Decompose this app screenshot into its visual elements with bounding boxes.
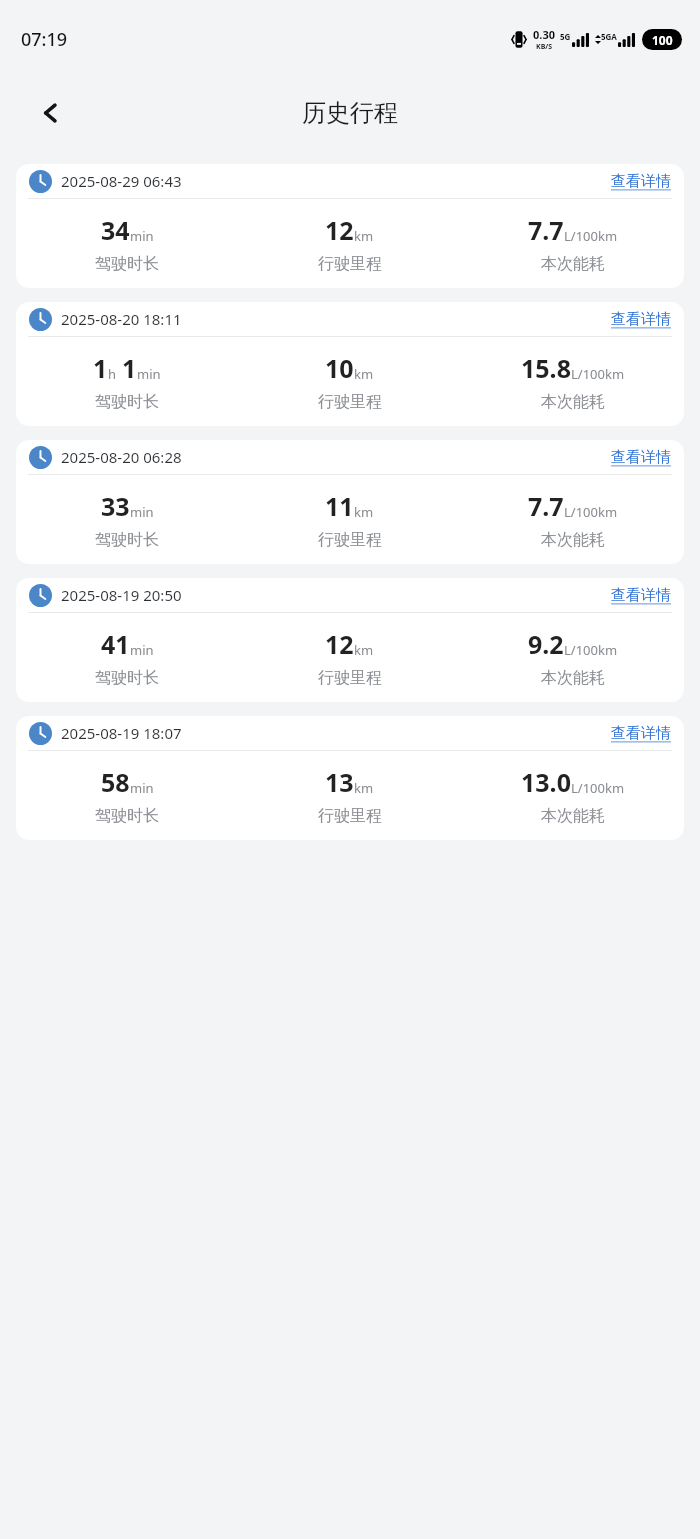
staticText: min: [130, 503, 154, 521]
staticText: 驾驶时长: [95, 668, 159, 688]
staticText: 13.0: [521, 765, 571, 799]
staticText: 本次能耗: [541, 668, 605, 688]
staticText: 1: [122, 351, 137, 385]
staticText: 100: [652, 32, 673, 48]
staticText: min: [130, 779, 154, 797]
button[interactable]: Back: [28, 90, 74, 136]
staticText: 7.7: [528, 213, 564, 247]
button[interactable]: 2025-08-20 18:11: [16, 302, 684, 426]
staticText: 34: [101, 213, 130, 247]
staticText: 07:19: [21, 27, 68, 52]
staticText: L/100km: [564, 227, 618, 245]
staticText: 2025-08-20 18:11: [61, 309, 182, 329]
staticText: 41: [101, 627, 130, 661]
staticText: 查看详情: [611, 172, 671, 191]
staticText: 2025-08-29 06:43: [61, 171, 182, 191]
button[interactable]: 2025-08-29 06:43: [16, 164, 684, 288]
staticText: min: [130, 227, 154, 245]
staticText: KB/S: [536, 42, 553, 52]
staticText: km: [354, 641, 374, 659]
staticText: 行驶里程: [318, 254, 382, 274]
staticText: 本次能耗: [541, 254, 605, 274]
staticText: h: [108, 365, 117, 383]
staticText: 驾驶时长: [95, 392, 159, 412]
staticText: 历史行程: [302, 98, 398, 128]
staticText: 本次能耗: [541, 392, 605, 412]
staticText: 驾驶时长: [95, 530, 159, 550]
staticText: 11: [325, 489, 354, 523]
staticText: 2025-08-20 06:28: [61, 447, 182, 467]
button[interactable]: 2025-08-19 18:07: [16, 716, 684, 840]
staticText: km: [354, 779, 374, 797]
staticText: 本次能耗: [541, 530, 605, 550]
staticText: km: [354, 227, 374, 245]
staticText: min: [137, 365, 161, 383]
button[interactable]: 查看详情: [609, 446, 673, 469]
staticText: 行驶里程: [318, 668, 382, 688]
staticText: 7.7: [528, 489, 564, 523]
staticText: 查看详情: [611, 586, 671, 605]
staticText: 本次能耗: [541, 806, 605, 826]
staticText: km: [354, 365, 374, 383]
staticText: 1: [93, 351, 108, 385]
staticText: 5G: [560, 31, 571, 42]
button[interactable]: 查看详情: [609, 584, 673, 607]
staticText: 12: [325, 627, 354, 661]
staticText: L/100km: [571, 365, 625, 383]
staticText: 58: [101, 765, 130, 799]
staticText: 5GA: [601, 31, 617, 42]
staticText: 2025-08-19 20:50: [61, 585, 182, 605]
staticText: 行驶里程: [318, 392, 382, 412]
staticText: km: [354, 503, 374, 521]
staticText: 行驶里程: [318, 530, 382, 550]
button[interactable]: 2025-08-20 06:28: [16, 440, 684, 564]
staticText: 13: [325, 765, 354, 799]
staticText: 2025-08-19 18:07: [61, 723, 182, 743]
staticText: 驾驶时长: [95, 806, 159, 826]
staticText: L/100km: [564, 503, 618, 521]
staticText: 0.30: [533, 27, 555, 42]
staticText: 查看详情: [611, 448, 671, 467]
staticText: 查看详情: [611, 310, 671, 329]
staticText: L/100km: [571, 779, 625, 797]
button[interactable]: 查看详情: [609, 722, 673, 745]
staticText: 查看详情: [611, 724, 671, 743]
staticText: 9.2: [528, 627, 564, 661]
staticText: 33: [101, 489, 130, 523]
staticText: 15.8: [521, 351, 571, 385]
button[interactable]: 查看详情: [609, 170, 673, 193]
staticText: 12: [325, 213, 354, 247]
staticText: min: [130, 641, 154, 659]
staticText: 行驶里程: [318, 806, 382, 826]
button[interactable]: 2025-08-19 20:50: [16, 578, 684, 702]
button[interactable]: 查看详情: [609, 308, 673, 331]
staticText: L/100km: [564, 641, 618, 659]
staticText: 10: [325, 351, 354, 385]
staticText: 驾驶时长: [95, 254, 159, 274]
